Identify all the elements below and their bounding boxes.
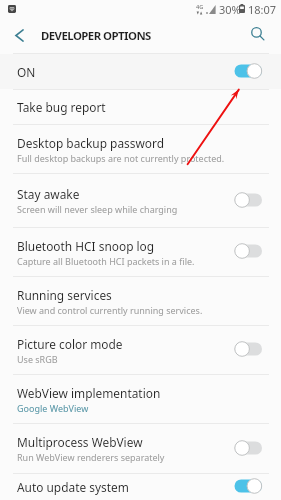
button[interactable]: Auto update system [0,474,281,500]
staticText: 18:07 [248,2,277,17]
staticText: Desktop backup password [17,135,165,151]
staticText: Multiprocess WebView [17,434,143,450]
button[interactable]: Picture color mode [0,326,281,374]
staticText: 4G [196,3,204,11]
staticText: Running services [17,287,112,303]
button[interactable]: Multiprocess WebView [0,424,281,473]
staticText: DEVELOPER OPTIONS [41,28,151,44]
staticText: Stay awake [17,186,80,202]
staticText: Run WebView renderers separately [17,451,165,463]
button[interactable]: Bluetooth HCI snoop log [0,228,281,276]
staticText: Full desktop backups are not currently p… [17,152,225,164]
staticText: Use sRGB [17,353,58,365]
button[interactable]: Stay awake [0,174,281,227]
button[interactable]: Running services [0,277,281,325]
staticText: Screen will never sleep while charging [17,203,178,215]
staticText: Auto update system [17,479,129,495]
staticText: Take bug report [17,99,106,115]
button[interactable]: ON [0,54,281,89]
staticText: Capture all Bluetooth HCI packets in a f… [17,255,195,267]
staticText: 30% [219,2,241,17]
staticText: ON [17,64,36,80]
staticText: Picture color mode [17,336,123,352]
button[interactable]: Take bug report [0,90,281,124]
button[interactable]: Desktop backup password [0,125,281,173]
staticText: WebView implementation [17,385,161,401]
button[interactable]: Search [247,22,281,53]
staticText: Bluetooth HCI snoop log [17,238,155,254]
staticText: View and control currently running servi… [17,304,203,316]
staticText: Google WebView [17,402,89,414]
button[interactable]: Navigate up [3,22,37,53]
button[interactable]: WebView implementation [0,375,281,423]
